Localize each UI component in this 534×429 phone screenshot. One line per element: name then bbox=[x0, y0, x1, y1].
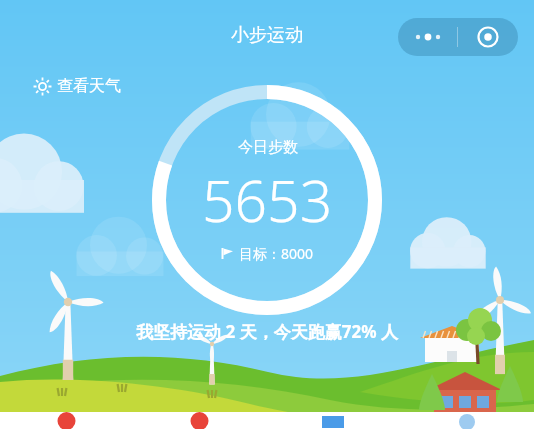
staticText: 今日步数 bbox=[238, 138, 298, 157]
button[interactable]: Steps bbox=[0, 412, 133, 429]
button[interactable]: Rank bbox=[266, 412, 400, 429]
button[interactable]: Run bbox=[133, 412, 266, 429]
button[interactable]: Mine bbox=[400, 412, 534, 429]
button[interactable]: Today steps progress bbox=[152, 85, 382, 315]
staticText: 小步运动 bbox=[231, 24, 303, 47]
button[interactable]: 查看天气 bbox=[30, 73, 125, 99]
button[interactable]: Close bbox=[458, 18, 518, 56]
staticText: 查看天气 bbox=[57, 76, 121, 96]
staticText: 目标：8000 bbox=[239, 244, 314, 263]
button[interactable]: More bbox=[398, 18, 457, 56]
button[interactable]: More options and close bbox=[398, 18, 518, 56]
staticText: 5653 bbox=[202, 161, 333, 239]
staticText: 我坚持运动 2 天，今天跑赢72% 人 bbox=[136, 320, 398, 343]
